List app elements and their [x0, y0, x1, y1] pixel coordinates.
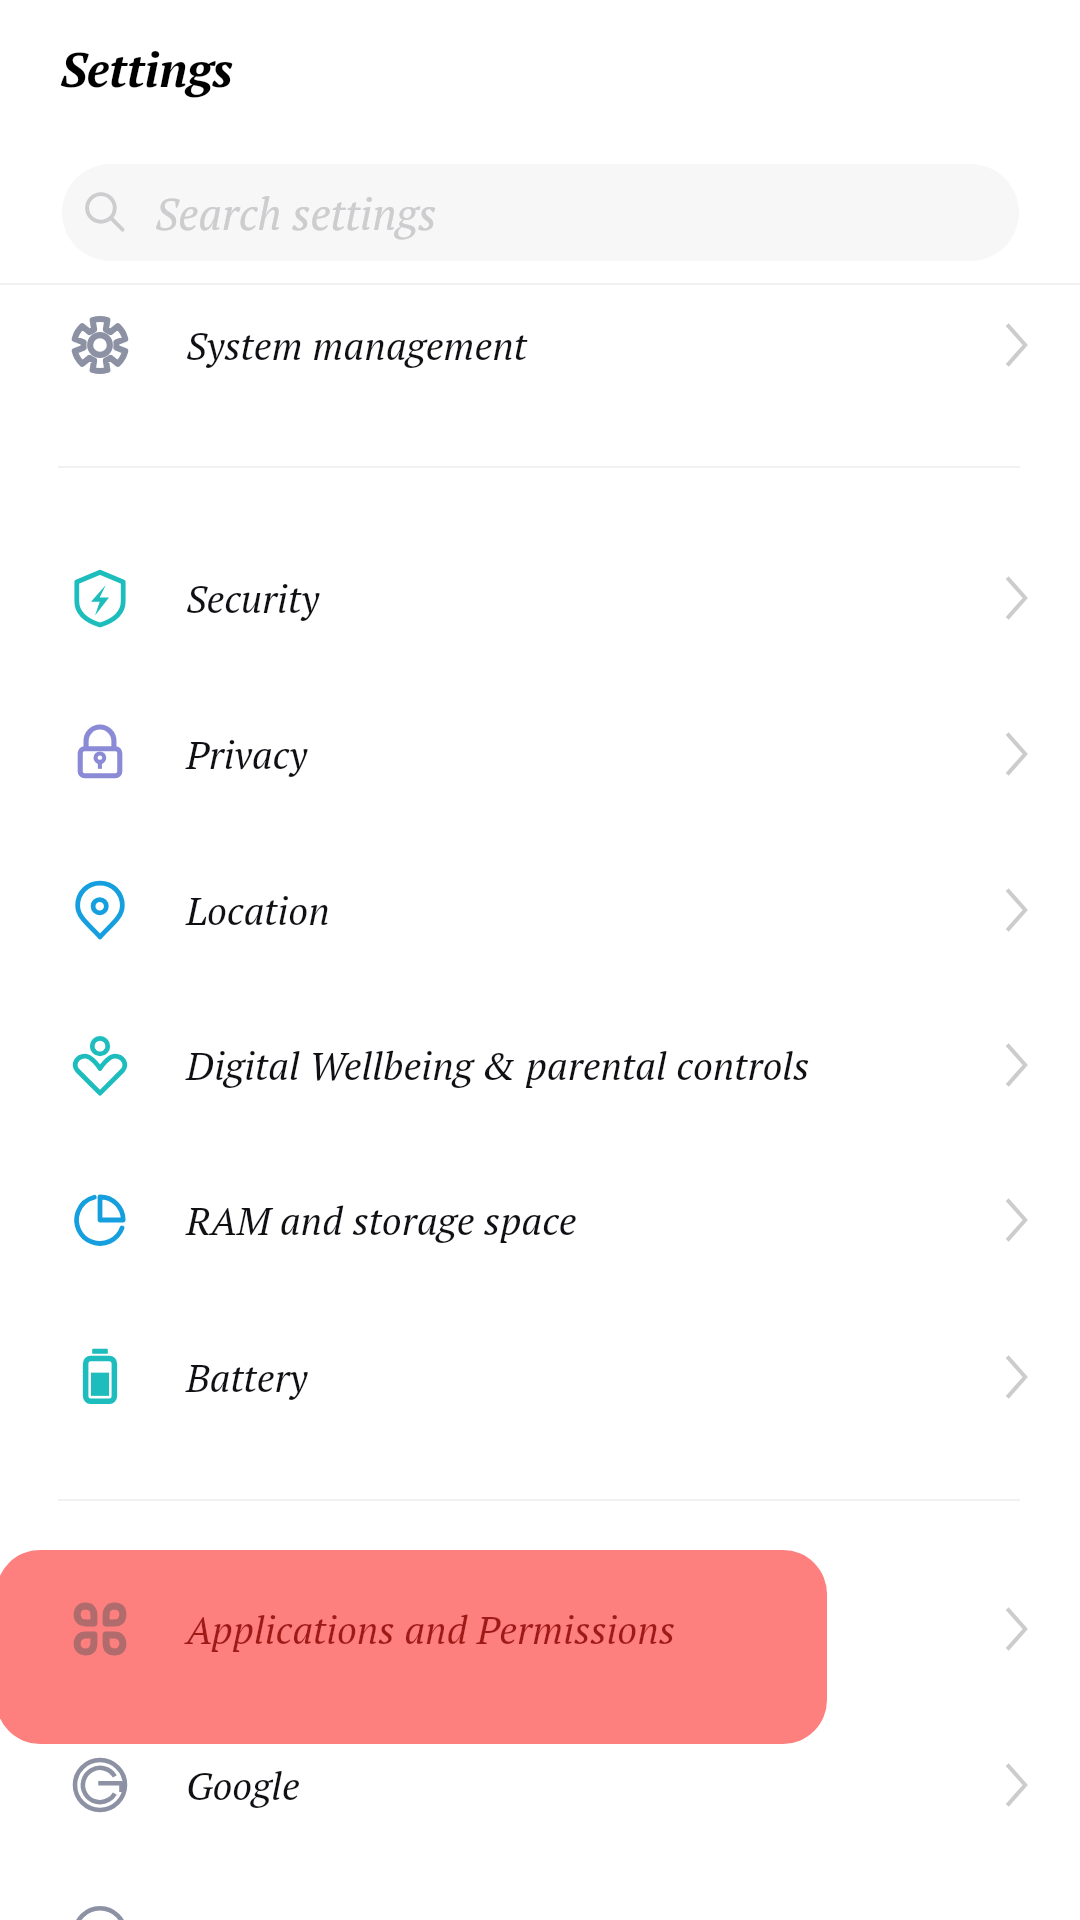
button[interactable]: Google: [0, 1707, 1080, 1863]
staticText: Location: [186, 884, 330, 936]
staticText: System management: [186, 319, 527, 371]
button[interactable]: Privacy: [0, 676, 1080, 832]
staticText: Privacy: [186, 728, 308, 780]
staticText: Applications and Permissions: [186, 1603, 676, 1655]
button[interactable]: System management: [0, 267, 1080, 423]
button[interactable]: RAM and storage space: [0, 1142, 1080, 1298]
button[interactable]: Digital Wellbeing & parental controls: [0, 987, 1080, 1143]
staticText: Google: [186, 1759, 300, 1811]
staticText: Battery: [186, 1351, 308, 1403]
staticText: Search settings: [155, 184, 437, 242]
button[interactable]: Security: [0, 520, 1080, 676]
button[interactable]: Search settings: [62, 164, 1019, 261]
staticText: Settings: [60, 37, 234, 101]
staticText: RAM and storage space: [186, 1194, 577, 1246]
staticText: Security: [186, 572, 319, 624]
button[interactable]: Applications and Permissions: [0, 1551, 1080, 1707]
staticText: Digital Wellbeing & parental controls: [186, 1039, 810, 1091]
button[interactable]: Location: [0, 832, 1080, 988]
button[interactable]: Battery: [0, 1299, 1080, 1455]
